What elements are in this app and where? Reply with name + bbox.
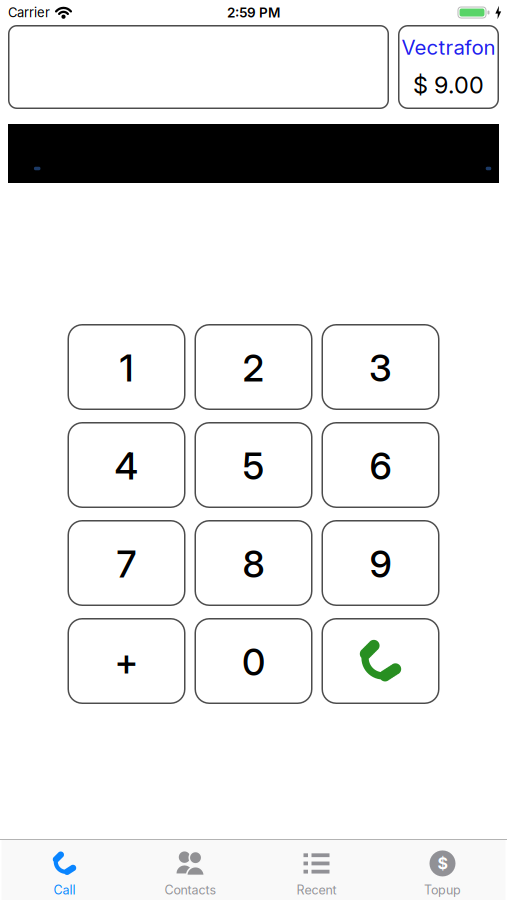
staticText: 5 bbox=[242, 444, 264, 488]
button[interactable]: 2 bbox=[194, 324, 312, 410]
staticText: 2:59 PM bbox=[227, 4, 280, 21]
button[interactable]: 5 bbox=[194, 422, 312, 508]
button[interactable]: 6 bbox=[321, 422, 439, 508]
staticText: Carrier bbox=[8, 5, 50, 20]
staticText: 2 bbox=[242, 346, 264, 390]
staticText: 0 bbox=[242, 640, 265, 684]
button[interactable]: 1 bbox=[67, 324, 185, 410]
button[interactable]: $ bbox=[379, 841, 505, 899]
staticText: $ 9.00 bbox=[413, 71, 484, 99]
button[interactable]: Call bbox=[321, 618, 439, 704]
staticText: Call bbox=[53, 882, 75, 897]
staticText: Topup bbox=[424, 882, 461, 897]
staticText: 7 bbox=[116, 542, 136, 586]
staticText: Vectrafon bbox=[401, 35, 495, 60]
button[interactable]: Recent bbox=[253, 841, 379, 899]
button[interactable]: 9 bbox=[321, 520, 439, 606]
button[interactable]: + bbox=[67, 618, 185, 704]
button[interactable]: 0 bbox=[194, 618, 312, 704]
button[interactable]: 8 bbox=[194, 520, 312, 606]
staticText: 3 bbox=[369, 346, 392, 390]
staticText: 4 bbox=[114, 444, 138, 488]
staticText: Contacts bbox=[164, 882, 216, 897]
staticText: $ bbox=[437, 854, 447, 873]
staticText: 9 bbox=[369, 542, 391, 586]
button[interactable]: Call bbox=[1, 841, 127, 899]
button[interactable]: Contacts bbox=[127, 841, 253, 899]
button[interactable]: 7 bbox=[67, 520, 185, 606]
staticText: 6 bbox=[369, 444, 391, 488]
button[interactable]: 4 bbox=[67, 422, 185, 508]
staticText: Recent bbox=[296, 882, 336, 897]
button[interactable]: 3 bbox=[321, 324, 439, 410]
staticText: 1 bbox=[119, 346, 133, 390]
staticText: + bbox=[114, 640, 138, 684]
staticText: 8 bbox=[242, 542, 264, 586]
